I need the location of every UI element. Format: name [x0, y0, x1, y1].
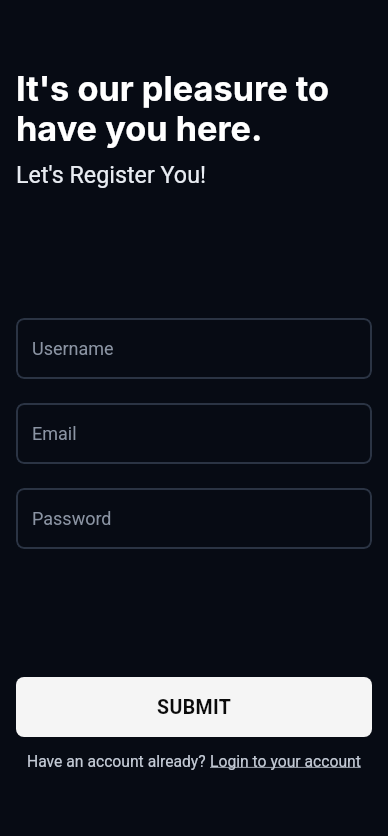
- staticText: SUBMIT: [157, 696, 232, 719]
- staticText: Let's Register You!: [16, 161, 207, 188]
- staticText: Username: [32, 338, 114, 359]
- staticText: Password: [32, 508, 112, 529]
- staticText: It's our pleasure to have you here.: [16, 68, 329, 149]
- button[interactable]: SUBMIT: [16, 677, 372, 737]
- button[interactable]: Login to your account: [210, 752, 361, 770]
- button[interactable]: Password: [16, 488, 372, 549]
- staticText: Have an account already?: [27, 752, 210, 770]
- staticText: Email: [32, 423, 77, 444]
- button[interactable]: Username: [16, 318, 372, 379]
- button[interactable]: Email: [16, 403, 372, 464]
